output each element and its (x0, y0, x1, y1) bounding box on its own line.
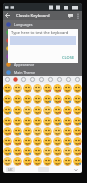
button[interactable]: Emoji (72, 146, 82, 156)
button[interactable]: Emoji (42, 156, 52, 166)
button[interactable]: Emoji (62, 105, 72, 116)
button[interactable]: Emoji (22, 126, 32, 136)
button[interactable]: Emoji (52, 83, 62, 94)
button[interactable]: Emoji (3, 83, 12, 94)
staticText: Keyboard Layout (14, 30, 43, 35)
button[interactable]: Emoji (52, 146, 62, 156)
button[interactable]: Emoji category 5 (37, 76, 46, 83)
staticText: ABC (8, 168, 13, 172)
button[interactable]: Emoji (42, 126, 52, 136)
button[interactable]: Emoji (42, 94, 52, 105)
button[interactable]: Emoji (72, 156, 82, 166)
button[interactable]: Emoji (52, 156, 62, 166)
button[interactable]: Emoji (72, 136, 82, 146)
button[interactable]: Emoji (32, 156, 42, 166)
button[interactable]: Back (3, 11, 12, 20)
button[interactable]: Emoji category 6 (46, 76, 55, 83)
button[interactable]: Emoji (22, 156, 32, 166)
staticText: CLOSE (62, 55, 75, 60)
button[interactable]: Emoji (32, 116, 42, 126)
button[interactable]: Keyboard Layout (3, 28, 82, 36)
button[interactable]: Emoji (12, 94, 22, 105)
button[interactable]: Emoji (32, 146, 42, 156)
button[interactable]: More options (74, 12, 81, 19)
button[interactable]: Emoji (62, 126, 72, 136)
button[interactable]: Emoji (72, 94, 82, 105)
staticText: Main Theme (14, 70, 35, 75)
button[interactable]: Emoji (32, 105, 42, 116)
button[interactable]: Emoji (3, 126, 12, 136)
button[interactable]: Emoji (52, 126, 62, 136)
button[interactable]: Emoji (22, 136, 32, 146)
button[interactable]: Emoji (12, 136, 22, 146)
button[interactable]: Emoji (62, 83, 72, 94)
button[interactable]: Emoji category 1 (3, 76, 11, 83)
button[interactable]: Main Theme (3, 68, 82, 76)
button[interactable]: Emoji (42, 105, 52, 116)
button[interactable]: Emoji (3, 146, 12, 156)
button[interactable]: CLOSE (62, 55, 75, 60)
button[interactable]: Emoji (32, 94, 42, 105)
button[interactable]: Emoji (62, 146, 72, 156)
button[interactable]: ABC (6, 167, 15, 172)
button[interactable]: Emoji (12, 126, 22, 136)
button[interactable]: Emoji (72, 83, 82, 94)
button[interactable]: Emoji (72, 105, 82, 116)
button[interactable]: Emoji (12, 105, 22, 116)
button[interactable]: Emoji (32, 83, 42, 94)
button[interactable]: Emoji category 9 (73, 76, 82, 83)
button[interactable]: Emoji (3, 156, 12, 166)
button[interactable]: Appearance (3, 60, 82, 68)
button[interactable]: Sound & Vibration (3, 36, 82, 44)
button[interactable]: Emoji (3, 94, 12, 105)
button[interactable]: Emoji (3, 116, 12, 126)
button[interactable]: Emoji (12, 116, 22, 126)
button[interactable]: Emoji (12, 146, 22, 156)
button[interactable]: Emoji (72, 126, 82, 136)
button[interactable]: Emoji (52, 136, 62, 146)
button[interactable]: Emoji (52, 94, 62, 105)
button[interactable]: Emoji (12, 83, 22, 94)
button[interactable]: Emoji (62, 94, 72, 105)
button[interactable]: Emoji (22, 116, 32, 126)
button[interactable]: Emoji category 2 (11, 76, 19, 83)
button[interactable]: Emoji (62, 116, 72, 126)
button[interactable]: Emoji (42, 136, 52, 146)
button[interactable]: Emoji (22, 94, 32, 105)
button[interactable]: Languages (3, 20, 82, 28)
button[interactable]: Emoji (22, 83, 32, 94)
button[interactable]: Emoji (72, 116, 82, 126)
button[interactable]: Emoji (62, 156, 72, 166)
button[interactable]: Emoji (52, 116, 62, 126)
button[interactable]: Emoji (3, 105, 12, 116)
button[interactable]: Emoji (52, 105, 62, 116)
button[interactable]: Emoji (42, 83, 52, 94)
staticText: Classic Keyboard (16, 13, 50, 19)
button[interactable]: Emoji (42, 146, 52, 156)
button[interactable]: Feedback (66, 12, 74, 20)
button[interactable]: Emoji category 8 (64, 76, 73, 83)
button[interactable]: Emoji (42, 116, 52, 126)
staticText: Languages (14, 22, 33, 27)
staticText: Appearance (14, 62, 35, 67)
button[interactable]: Emoji (62, 136, 72, 146)
staticText: Type here to test the keyboard (11, 30, 69, 35)
button[interactable]: Emoji category 3 (19, 76, 28, 83)
button[interactable]: Emoji category 4 (28, 76, 37, 83)
button[interactable]: Emoji (22, 105, 32, 116)
button[interactable]: Emoji category 7 (55, 76, 64, 83)
button[interactable]: Auto Correction (3, 44, 82, 52)
button[interactable]: Backspace (72, 166, 79, 173)
button[interactable]: Emoji (3, 136, 12, 146)
button[interactable]: Gesture Typing (3, 52, 82, 60)
button[interactable]: Emoji (12, 156, 22, 166)
button[interactable]: Emoji (32, 126, 42, 136)
button[interactable]: Emoji (22, 146, 32, 156)
button[interactable]: Emoji (32, 136, 42, 146)
